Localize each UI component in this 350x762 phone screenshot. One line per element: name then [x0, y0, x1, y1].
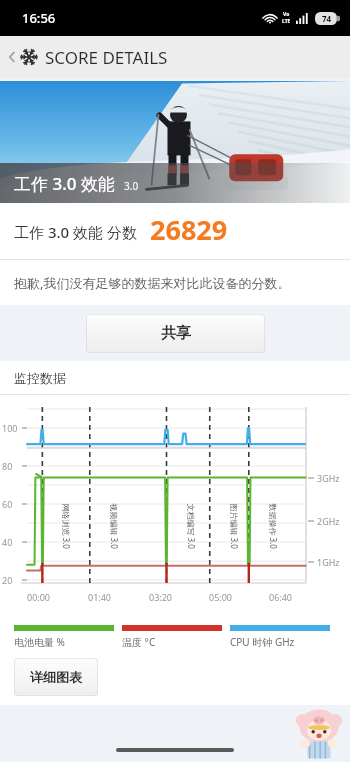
staticText: 05:00: [209, 591, 233, 603]
staticText: SCORE DETAILS: [45, 46, 168, 69]
staticText: LTE: [282, 18, 291, 25]
staticText: 视频编辑 3.0: [108, 503, 119, 549]
button[interactable]: 共享: [86, 314, 265, 353]
staticText: 温度 °C: [122, 635, 156, 649]
staticText: 电池电量 %: [14, 635, 65, 649]
staticText: 80: [2, 460, 24, 472]
staticText: CPU 时钟 GHz: [230, 635, 295, 649]
staticText: 20: [2, 574, 24, 586]
staticText: 共享: [161, 324, 191, 343]
staticText: 图片编辑 3.0: [228, 503, 239, 549]
other: Back: [5, 50, 19, 64]
staticText: 工作 3.0 效能 分数: [14, 222, 137, 242]
staticText: 16:56: [22, 9, 56, 27]
staticText: 06:40: [269, 591, 293, 603]
staticText: 抱歉,我们没有足够的数据来对比此设备的分数。: [14, 274, 291, 292]
staticText: 00:00: [27, 591, 51, 603]
staticText: Vo: [283, 11, 290, 18]
staticText: 01:40: [88, 591, 112, 603]
staticText: 数据操作 3.0: [267, 503, 278, 549]
button[interactable]: Back: [0, 36, 350, 78]
button[interactable]: 详细图表: [14, 658, 98, 696]
staticText: 监控数据: [14, 370, 66, 386]
staticText: 60: [2, 498, 24, 510]
staticText: 3GHz: [317, 472, 340, 484]
staticText: 详细图表: [30, 669, 82, 685]
staticText: 40: [2, 536, 24, 548]
staticText: 文档编写 3.0: [185, 503, 196, 549]
staticText: 26829: [150, 211, 228, 248]
staticText: 100: [2, 422, 24, 434]
staticText: 网络浏览 3.0: [60, 503, 71, 549]
staticText: 2GHz: [317, 515, 340, 527]
staticText: 74: [322, 13, 332, 24]
staticText: 工作 3.0 效能: [14, 172, 115, 195]
staticText: 1GHz: [317, 556, 340, 568]
staticText: 03:20: [149, 591, 173, 603]
staticText: 3.0: [124, 179, 139, 193]
